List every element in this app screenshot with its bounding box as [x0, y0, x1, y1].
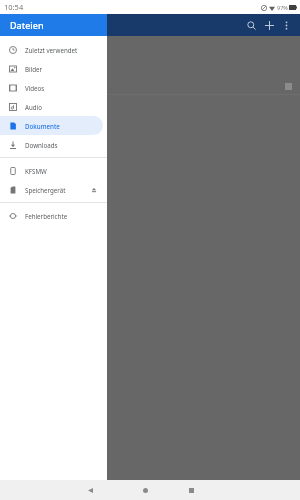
- staticText: Dateien: [10, 19, 44, 31]
- staticText: 97%: [277, 4, 288, 11]
- button[interactable]: Übersicht: [184, 483, 198, 497]
- button[interactable]: Fehlerberichte: [0, 206, 103, 225]
- button[interactable]: Zurück: [83, 483, 97, 497]
- staticText: Audio: [25, 103, 97, 111]
- button[interactable]: Startbildschirm: [138, 483, 152, 497]
- button[interactable]: Speichergerät: [0, 180, 103, 199]
- button[interactable]: Weitere Optionen: [278, 17, 294, 33]
- button[interactable]: Videos: [0, 78, 103, 97]
- button[interactable]: Hinzufügen: [260, 16, 278, 34]
- button[interactable]: Suchen: [242, 16, 260, 34]
- staticText: KFSMW: [25, 167, 97, 175]
- staticText: Bilder: [25, 65, 97, 73]
- button[interactable]: Zuletzt verwendet: [0, 40, 103, 59]
- staticText: 10:54: [4, 2, 24, 12]
- staticText: Videos: [25, 84, 97, 92]
- staticText: Fehlerberichte: [25, 212, 97, 220]
- staticText: Speichergerät: [25, 186, 91, 194]
- staticText: Dokumente: [25, 122, 97, 130]
- button[interactable]: Dokumente: [0, 116, 103, 135]
- button[interactable]: Ansicht wechseln: [284, 82, 293, 91]
- staticText: Zuletzt verwendet: [25, 46, 97, 54]
- staticText: Downloads: [25, 141, 97, 149]
- button[interactable]: KFSMW: [0, 161, 103, 180]
- button[interactable]: Audio: [0, 97, 103, 116]
- button[interactable]: Bilder: [0, 59, 103, 78]
- button[interactable]: Downloads: [0, 135, 103, 154]
